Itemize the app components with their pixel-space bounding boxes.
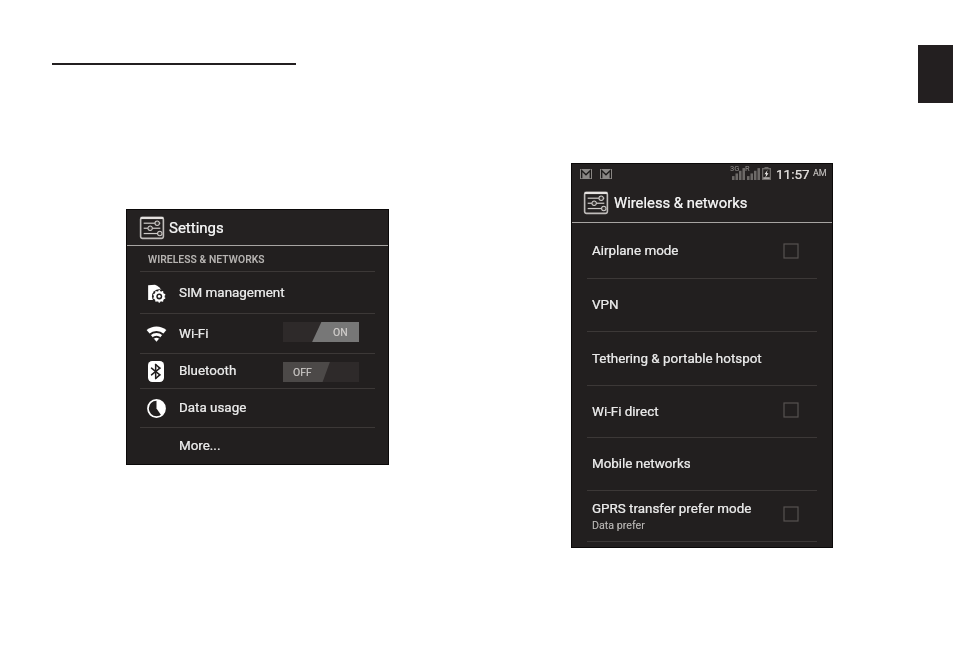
staticText: Data usage	[179, 400, 247, 416]
staticText: WIRELESS & NETWORKS	[148, 253, 265, 265]
staticText: Settings	[169, 219, 224, 237]
button[interactable]: Mobile networks	[572, 438, 832, 490]
button[interactable]: Wi-Fi switch	[283, 322, 359, 342]
staticText: GPRS transfer prefer mode	[592, 501, 752, 517]
staticText: Bluetooth	[179, 363, 237, 379]
staticText: Mobile networks	[592, 456, 691, 472]
staticText: R	[745, 164, 750, 173]
button[interactable]: Bluetooth switch	[283, 362, 359, 382]
staticText: Airplane mode	[592, 243, 679, 259]
button[interactable]: Wi-Fi direct checkbox	[784, 403, 798, 417]
button[interactable]: Wireless & networks	[572, 183, 832, 222]
staticText: 3G	[730, 164, 740, 173]
staticText: More...	[179, 438, 221, 454]
button[interactable]: Airplane mode checkbox	[784, 244, 798, 258]
button[interactable]: More...	[127, 428, 388, 464]
staticText: AM	[813, 168, 827, 179]
staticText: VPN	[592, 297, 619, 313]
button[interactable]: GPRS transfer prefer mode checkbox	[784, 507, 798, 521]
staticText: Wi-Fi	[179, 326, 209, 342]
button[interactable]: VPN	[572, 279, 832, 331]
staticText: Data prefer	[592, 519, 645, 532]
button[interactable]: Bluetooth	[127, 354, 388, 388]
button[interactable]: SIM management	[127, 272, 388, 313]
button[interactable]: Tethering & portable hotspot	[572, 332, 832, 385]
button[interactable]: Airplane mode	[572, 223, 832, 278]
staticText: OFF	[293, 366, 312, 378]
staticText: Wireless & networks	[614, 194, 748, 211]
button[interactable]: Wi-Fi	[127, 314, 388, 353]
staticText: Wi-Fi direct	[592, 404, 659, 420]
staticText: 11:57	[776, 166, 810, 182]
button[interactable]: Settings	[127, 210, 388, 245]
button[interactable]: Data usage	[127, 389, 388, 427]
staticText: SIM management	[179, 285, 285, 301]
staticText: Tethering & portable hotspot	[592, 351, 762, 367]
button[interactable]: GPRS transfer prefer mode	[572, 491, 832, 541]
staticText: ON	[333, 326, 348, 338]
button[interactable]: Wi-Fi direct	[572, 386, 832, 437]
